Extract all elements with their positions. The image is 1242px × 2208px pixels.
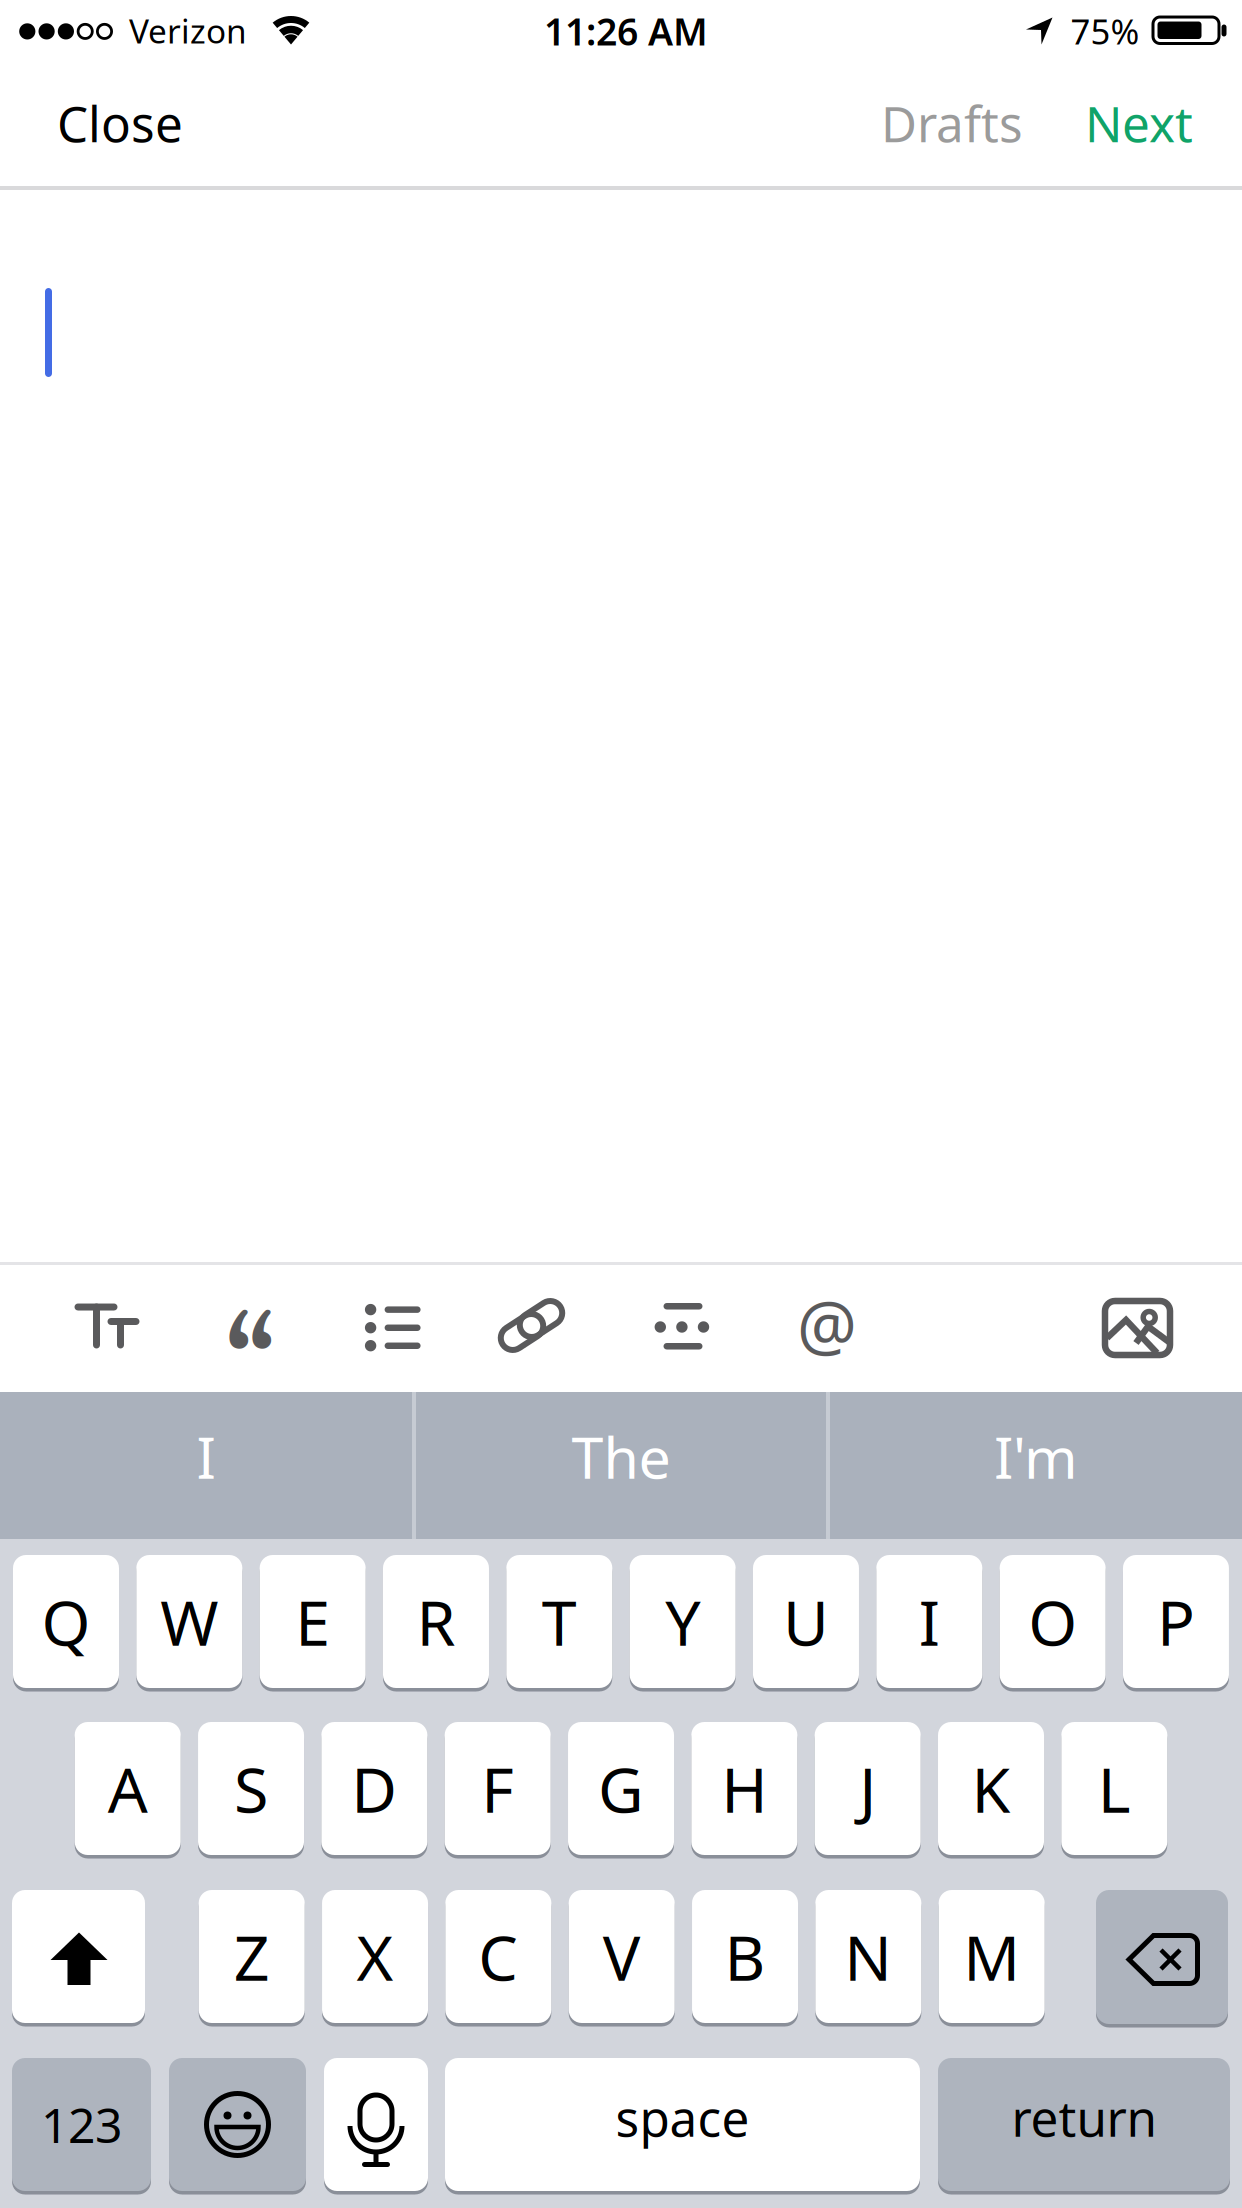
button[interactable]: The	[416, 1392, 826, 1539]
button[interactable]: L	[1061, 1722, 1167, 1855]
button[interactable]: R	[383, 1555, 489, 1688]
button[interactable]: G	[568, 1722, 674, 1855]
button[interactable]: J	[815, 1722, 921, 1855]
button[interactable]: Numbers	[12, 2058, 151, 2191]
staticText: The	[571, 1418, 670, 1494]
button[interactable]: Emoji	[169, 2058, 306, 2191]
button[interactable]: F	[445, 1722, 551, 1855]
button[interactable]: I	[0, 1392, 412, 1539]
button[interactable]: A	[75, 1722, 181, 1855]
staticText: 11:26 AM	[544, 6, 708, 56]
button[interactable]: W	[136, 1555, 242, 1688]
staticText: Q	[41, 1580, 90, 1663]
button[interactable]: Close	[57, 90, 183, 156]
button[interactable]: Z	[199, 1890, 305, 2023]
button[interactable]: M	[939, 1890, 1045, 2023]
staticText: B	[724, 1915, 765, 1998]
staticText: P	[1157, 1580, 1195, 1663]
button[interactable]: Text style	[57, 1276, 157, 1376]
button[interactable]: Quote	[200, 1326, 300, 1426]
staticText: U	[783, 1580, 829, 1663]
button[interactable]: N	[815, 1890, 921, 2023]
staticText: C	[478, 1915, 518, 1998]
button[interactable]: Next	[1085, 90, 1193, 156]
staticText: S	[234, 1747, 268, 1830]
staticText: Close	[57, 90, 183, 156]
button[interactable]: Add link	[494, 1288, 594, 1388]
button[interactable]: V	[569, 1890, 675, 2023]
staticText: V	[603, 1915, 641, 1998]
button[interactable]: P	[1123, 1555, 1229, 1688]
staticText: Drafts	[881, 90, 1023, 156]
staticText: G	[598, 1747, 644, 1830]
staticText: A	[108, 1747, 148, 1830]
staticText: J	[859, 1747, 876, 1830]
staticText: 123	[41, 2093, 122, 2156]
button[interactable]: Drafts	[881, 90, 1023, 156]
button[interactable]: D	[321, 1722, 427, 1855]
button[interactable]: O	[1000, 1555, 1106, 1688]
button[interactable]: X	[322, 1890, 428, 2023]
staticText: “	[224, 1296, 275, 1455]
button[interactable]: Delete	[1096, 1890, 1228, 2024]
button[interactable]: H	[691, 1722, 797, 1855]
staticText: return	[1011, 2085, 1156, 2150]
button[interactable]: Shift	[12, 1890, 145, 2023]
button[interactable]: Bulleted list	[345, 1288, 445, 1388]
staticText: Verizon	[129, 8, 247, 53]
staticText: N	[844, 1915, 892, 1998]
staticText: H	[721, 1747, 767, 1830]
button[interactable]: Add image	[1105, 1301, 1170, 1355]
staticText: I'm	[994, 1418, 1078, 1494]
staticText: E	[295, 1580, 330, 1663]
staticText: I	[196, 1418, 215, 1494]
staticText: Z	[234, 1915, 270, 1998]
button[interactable]: return	[938, 2058, 1230, 2191]
button[interactable]: T	[506, 1555, 612, 1688]
staticText: W	[160, 1580, 218, 1663]
staticText: R	[416, 1580, 455, 1663]
button[interactable]: B	[692, 1890, 798, 2023]
button[interactable]: I'm	[830, 1392, 1242, 1539]
button[interactable]: Section break	[643, 1288, 743, 1388]
button[interactable]: K	[938, 1722, 1044, 1855]
button[interactable]: U	[753, 1555, 859, 1688]
button[interactable]: Dictate	[324, 2058, 428, 2191]
button[interactable]: I	[876, 1555, 982, 1688]
staticText: O	[1028, 1580, 1077, 1663]
staticText: K	[971, 1747, 1010, 1830]
button[interactable]: S	[198, 1722, 304, 1855]
staticText: space	[615, 2085, 749, 2150]
button[interactable]: E	[260, 1555, 366, 1688]
staticText: I	[919, 1580, 940, 1663]
staticText: L	[1098, 1747, 1131, 1830]
staticText: X	[356, 1915, 393, 1998]
staticText: M	[963, 1915, 1020, 1998]
staticText: Y	[665, 1580, 700, 1663]
button[interactable]: space	[445, 2058, 920, 2191]
button[interactable]: Y	[630, 1555, 736, 1688]
staticText: @	[797, 1280, 857, 1368]
staticText: D	[351, 1747, 397, 1830]
button[interactable]: Mention	[777, 1274, 877, 1374]
staticText: 75%	[1070, 8, 1139, 54]
staticText: T	[542, 1580, 577, 1663]
staticText: F	[481, 1747, 514, 1830]
button[interactable]: Q	[13, 1555, 119, 1688]
staticText: Next	[1085, 90, 1193, 156]
button[interactable]: C	[445, 1890, 551, 2023]
